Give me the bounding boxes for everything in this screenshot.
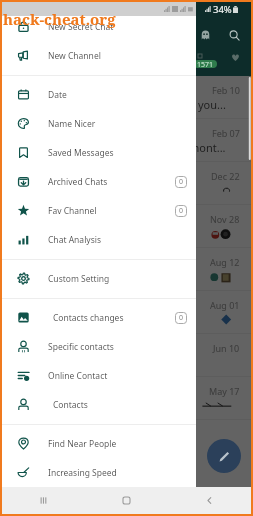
button[interactable]: New Channel [2, 41, 196, 70]
button[interactable]: Ghost mode [193, 23, 217, 47]
staticText: Feb 10 [212, 84, 240, 96]
staticText: 0 [179, 206, 184, 216]
staticText: 34% [213, 3, 232, 16]
staticText: Fav Channel [48, 205, 97, 217]
staticText: Aug 12 [210, 256, 240, 268]
button[interactable]: Home [85, 487, 168, 514]
staticText: May 17 [209, 385, 240, 397]
button[interactable]: Name Nicer [2, 109, 196, 138]
staticText: New Channel [48, 50, 101, 62]
staticText: Archived Chats [48, 176, 108, 188]
button[interactable]: New Secret Chat [2, 12, 196, 41]
staticText: Online Contact [48, 370, 108, 382]
button[interactable]: Back [168, 487, 251, 514]
button[interactable]: Chat Analysis [2, 225, 196, 254]
staticText: 0 [179, 313, 184, 323]
staticText: hack-cheat.org [3, 9, 116, 29]
button[interactable]: Saved Messages [2, 138, 196, 167]
staticText: Specific contacts [48, 341, 114, 353]
button[interactable]: Fav Channel [2, 196, 196, 225]
staticText: Find Near People [48, 438, 117, 450]
button[interactable]: Custom Setting [2, 264, 196, 293]
staticText: Chat Analysis [48, 234, 101, 246]
staticText: Contacts [53, 399, 88, 411]
staticText: 0 [179, 177, 184, 187]
button[interactable]: Increasing Speed [2, 458, 196, 487]
staticText: Increasing Speed [48, 467, 117, 479]
staticText: Jun 10 [213, 342, 240, 354]
button[interactable]: Contacts changes [2, 303, 196, 332]
staticText: New Secret Chat [48, 21, 114, 33]
staticText: Contacts changes [53, 312, 124, 324]
staticText: Aug 01 [210, 299, 240, 311]
staticText: Date [48, 89, 67, 101]
button[interactable]: Search [222, 23, 246, 47]
button[interactable]: New message [207, 439, 241, 473]
staticText: Feb 07 [212, 127, 240, 139]
staticText: Saved Messages [48, 147, 114, 159]
staticText: Dec 22 [211, 170, 240, 182]
button[interactable]: Specific contacts [2, 332, 196, 361]
staticText: Name Nicer [48, 118, 96, 130]
staticText: 1571 [197, 60, 214, 68]
button[interactable]: Contacts [2, 390, 196, 419]
staticText: Nov 28 [210, 213, 240, 225]
button[interactable]: Archived Chats [2, 167, 196, 196]
button[interactable]: Date [2, 80, 196, 109]
staticText: is you... [187, 97, 226, 112]
staticText: mont... [189, 140, 226, 155]
button[interactable]: Recent apps [2, 487, 85, 514]
button[interactable]: Find Near People [2, 429, 196, 458]
staticText: Custom Setting [48, 273, 110, 285]
button[interactable]: Online Contact [2, 361, 196, 390]
